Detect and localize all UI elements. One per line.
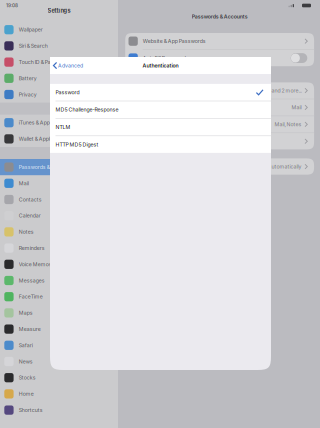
button[interactable]: Shortcuts bbox=[0, 402, 118, 418]
staticText: FaceTime bbox=[19, 294, 43, 300]
staticText: Website & App Passwords bbox=[143, 38, 206, 44]
button[interactable]: Battery bbox=[0, 70, 118, 86]
staticText: Automatically bbox=[267, 163, 301, 170]
button[interactable]: Wallet & Apple Pay bbox=[0, 131, 118, 147]
staticText: Passwords & Accounts bbox=[192, 13, 248, 20]
staticText: Passwords & Accounts bbox=[19, 164, 75, 170]
staticText: NTLM bbox=[55, 124, 70, 130]
button[interactable]: Home bbox=[0, 386, 118, 402]
button[interactable]: Contacts bbox=[0, 191, 118, 208]
button[interactable]: Fetch New Data bbox=[125, 158, 314, 175]
button[interactable]: Siri & Search bbox=[0, 38, 118, 54]
staticText: Contacts bbox=[19, 196, 42, 203]
staticText: Settings bbox=[47, 7, 70, 14]
button[interactable]: FaceTime bbox=[0, 289, 118, 305]
button[interactable]: Stocks bbox=[0, 370, 118, 386]
staticText: Mail, Notes bbox=[274, 121, 301, 127]
button[interactable]: HTTP MD5 Digest bbox=[50, 136, 271, 153]
button[interactable]: Notes bbox=[0, 224, 118, 240]
button[interactable]: iTunes & App Store bbox=[0, 115, 118, 131]
button[interactable]: Measure bbox=[0, 321, 118, 337]
button[interactable]: iCloud bbox=[125, 82, 314, 99]
staticText: Stocks bbox=[19, 375, 36, 381]
button[interactable]: Website & App Passwords bbox=[125, 33, 314, 49]
staticText: News bbox=[19, 358, 33, 365]
staticText: Password bbox=[55, 89, 79, 95]
staticText: Mail bbox=[291, 104, 301, 111]
staticText: Authentication bbox=[142, 62, 178, 69]
staticText: Messages bbox=[19, 277, 45, 284]
staticText: Advanced bbox=[58, 62, 83, 69]
button[interactable]: Outlook bbox=[125, 116, 314, 132]
staticText: Measure bbox=[19, 326, 41, 332]
staticText: Voice Memos bbox=[19, 261, 52, 267]
button[interactable]: News bbox=[0, 353, 118, 370]
button[interactable]: Messages bbox=[0, 272, 118, 289]
staticText: iTunes & App Store bbox=[19, 120, 64, 126]
button[interactable]: NTLM bbox=[50, 119, 271, 135]
button[interactable]: Wallpaper bbox=[0, 22, 118, 38]
button[interactable]: Voice Memos bbox=[0, 256, 118, 272]
button[interactable]: Advanced bbox=[50, 57, 83, 74]
staticText: Mail bbox=[19, 180, 29, 186]
button[interactable]: Safari bbox=[0, 337, 118, 353]
staticText: Safari bbox=[19, 342, 33, 348]
staticText: Notes bbox=[19, 229, 34, 235]
button[interactable]: Reminders bbox=[0, 240, 118, 256]
button[interactable]: Calendar bbox=[0, 208, 118, 224]
button[interactable]: AutoFill Passwords bbox=[125, 50, 314, 66]
button[interactable]: MD5 Challenge-Response bbox=[50, 101, 271, 118]
button[interactable]: Privacy bbox=[0, 86, 118, 103]
button[interactable]: Gmail bbox=[125, 99, 314, 116]
staticText: HTTP MD5 Digest bbox=[55, 141, 98, 148]
staticText: Maps bbox=[19, 310, 33, 316]
staticText: Battery bbox=[19, 75, 37, 81]
button[interactable]: Passwords & Accounts bbox=[0, 159, 118, 175]
staticText: Shortcuts bbox=[19, 407, 43, 413]
staticText: Home bbox=[19, 391, 34, 397]
staticText: 19:08 bbox=[6, 3, 18, 8]
button[interactable]: Add Account bbox=[125, 133, 314, 149]
staticText: Siri & Search bbox=[19, 43, 48, 49]
staticText: MD5 Challenge-Response bbox=[55, 107, 118, 113]
button[interactable]: Touch ID & Passcode bbox=[0, 54, 118, 70]
staticText: Mail, Contacts and 2 more... bbox=[235, 87, 301, 94]
staticText: Wallet & Apple Pay bbox=[19, 136, 63, 142]
staticText: Touch ID & Passcode bbox=[19, 59, 69, 65]
button[interactable]: Password bbox=[50, 84, 271, 101]
staticText: Calendar bbox=[19, 213, 41, 219]
staticText: AutoFill Passwords bbox=[143, 55, 189, 61]
button[interactable]: Mail bbox=[0, 175, 118, 191]
staticText: Reminders bbox=[19, 245, 45, 251]
button[interactable]: Maps bbox=[0, 305, 118, 321]
staticText: Privacy bbox=[19, 91, 37, 98]
staticText: Wallpaper bbox=[19, 27, 43, 33]
